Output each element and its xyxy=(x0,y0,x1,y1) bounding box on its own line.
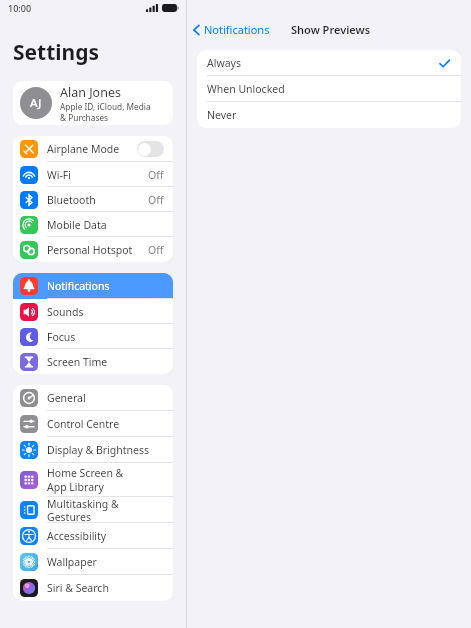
button[interactable]: Notifications xyxy=(193,22,270,37)
staticText: Multitasking & Gestures xyxy=(47,497,164,523)
staticText: Sounds xyxy=(47,305,84,319)
staticText: Notifications xyxy=(47,279,110,293)
button[interactable]: Control Centre xyxy=(13,411,173,437)
button[interactable]: Home Screen & xyxy=(13,463,173,497)
staticText: General xyxy=(47,391,86,405)
staticText: Siri & Search xyxy=(47,581,109,595)
button[interactable]: Display & Brightness xyxy=(13,437,173,463)
staticText: Alan Jones xyxy=(60,84,121,101)
staticText: Personal Hotspot xyxy=(47,243,133,257)
staticText: Off xyxy=(148,193,164,207)
staticText: Bluetooth xyxy=(47,193,96,207)
button[interactable]: AJ xyxy=(13,81,173,125)
staticText: Notifications xyxy=(204,22,270,37)
button[interactable]: Personal Hotspot xyxy=(13,237,173,262)
button[interactable]: Mobile Data xyxy=(13,212,173,237)
staticText: Home Screen & xyxy=(47,466,124,480)
staticText: Always xyxy=(207,56,439,70)
staticText: Settings xyxy=(13,38,100,67)
staticText: & Purchases xyxy=(60,112,109,123)
button[interactable]: Airplane Mode toggle xyxy=(137,141,164,157)
staticText: Airplane Mode xyxy=(47,142,120,156)
staticText: Never xyxy=(207,108,450,122)
staticText: Wallpaper xyxy=(47,555,97,569)
button[interactable]: Screen Time xyxy=(13,349,173,374)
button[interactable]: When Unlocked xyxy=(197,76,461,102)
staticText: Mobile Data xyxy=(47,218,107,232)
staticText: Control Centre xyxy=(47,417,120,431)
staticText: Wi-Fi xyxy=(47,168,72,182)
button[interactable]: Airplane Mode xyxy=(13,136,173,162)
button[interactable]: Notifications xyxy=(13,273,173,299)
button[interactable]: General xyxy=(13,385,173,411)
staticText: Show Previews xyxy=(291,22,371,37)
staticText: App Library xyxy=(47,480,104,494)
button[interactable]: Wallpaper xyxy=(13,549,173,575)
staticText: When Unlocked xyxy=(207,82,450,96)
button[interactable]: Accessibility xyxy=(13,523,173,549)
staticText: Focus xyxy=(47,330,76,344)
staticText: Display & Brightness xyxy=(47,443,150,457)
button[interactable]: Focus xyxy=(13,324,173,349)
staticText: Off xyxy=(148,243,164,257)
staticText: Screen Time xyxy=(47,355,108,369)
button[interactable]: Never xyxy=(197,102,461,128)
button[interactable]: Bluetooth xyxy=(13,187,173,212)
button[interactable]: Always xyxy=(197,50,461,76)
button[interactable]: Sounds xyxy=(13,299,173,324)
staticText: Off xyxy=(148,168,164,182)
staticText: Apple ID, iCloud, Media xyxy=(60,101,151,112)
button[interactable]: Multitasking & Gestures xyxy=(13,497,173,523)
staticText: 10:00 xyxy=(8,2,32,14)
button[interactable]: Siri & Search xyxy=(13,575,173,601)
staticText: AJ xyxy=(30,95,42,111)
staticText: Accessibility xyxy=(47,529,107,543)
button[interactable]: Wi-Fi xyxy=(13,162,173,187)
